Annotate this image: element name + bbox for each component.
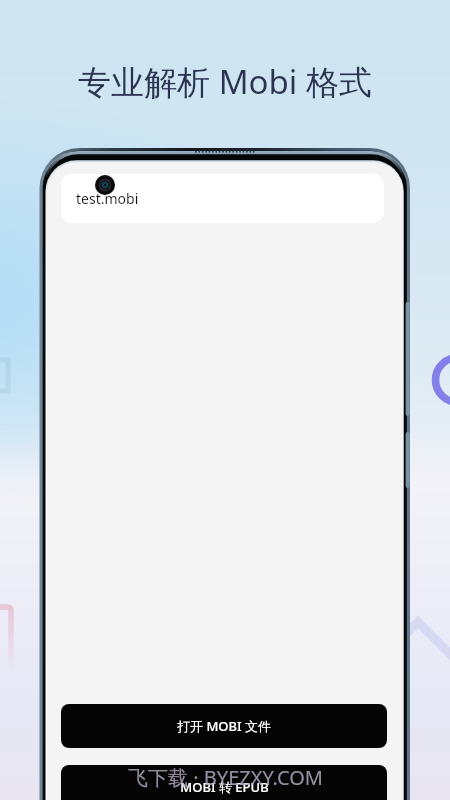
button[interactable]: MOBI 转 EPUB: [61, 765, 387, 800]
staticText: 打开 MOBI 文件: [177, 717, 271, 735]
staticText: 专业解析 Mobi 格式: [78, 59, 372, 104]
staticText: MOBI 转 EPUB: [180, 778, 269, 796]
button[interactable]: 打开 MOBI 文件: [61, 704, 387, 748]
staticText: 飞下载 · BYEZXY.COM: [128, 764, 323, 791]
staticText: test.mobi: [76, 189, 139, 208]
button[interactable]: test.mobi: [61, 174, 384, 223]
